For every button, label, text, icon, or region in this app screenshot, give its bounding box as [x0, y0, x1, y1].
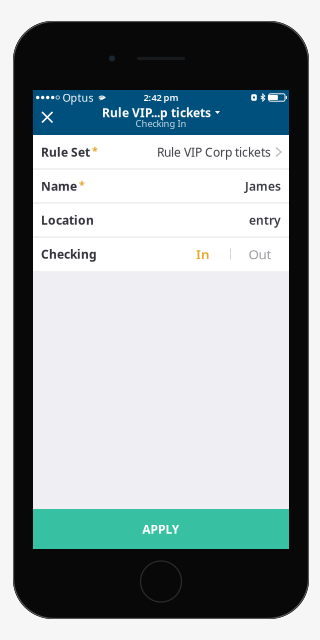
staticText: Location — [41, 212, 94, 228]
staticText: Rule VIP...p tickets — [102, 104, 211, 120]
button[interactable]: Out — [231, 237, 289, 271]
staticText: Checking In — [135, 117, 186, 130]
button[interactable]: Rule Set — [33, 135, 289, 169]
button[interactable]: Close — [33, 105, 61, 134]
staticText: Optus — [62, 90, 93, 105]
staticText: Name — [41, 178, 77, 194]
button[interactable]: In — [176, 237, 230, 271]
staticText: APPLY — [142, 521, 180, 537]
staticText: entry — [249, 212, 281, 228]
staticText: Out — [248, 245, 271, 263]
staticText: In — [196, 245, 210, 263]
staticText: * — [79, 177, 85, 192]
staticText: * — [92, 143, 98, 158]
staticText: 2:42 pm — [143, 91, 178, 104]
button[interactable]: Location — [33, 203, 289, 237]
staticText: Checking — [41, 246, 97, 262]
staticText: Rule VIP Corp tickets — [157, 144, 271, 160]
staticText: James — [245, 178, 281, 194]
button[interactable]: APPLY — [33, 509, 289, 549]
staticText: Rule Set — [41, 144, 90, 160]
button[interactable]: Name — [33, 169, 289, 203]
